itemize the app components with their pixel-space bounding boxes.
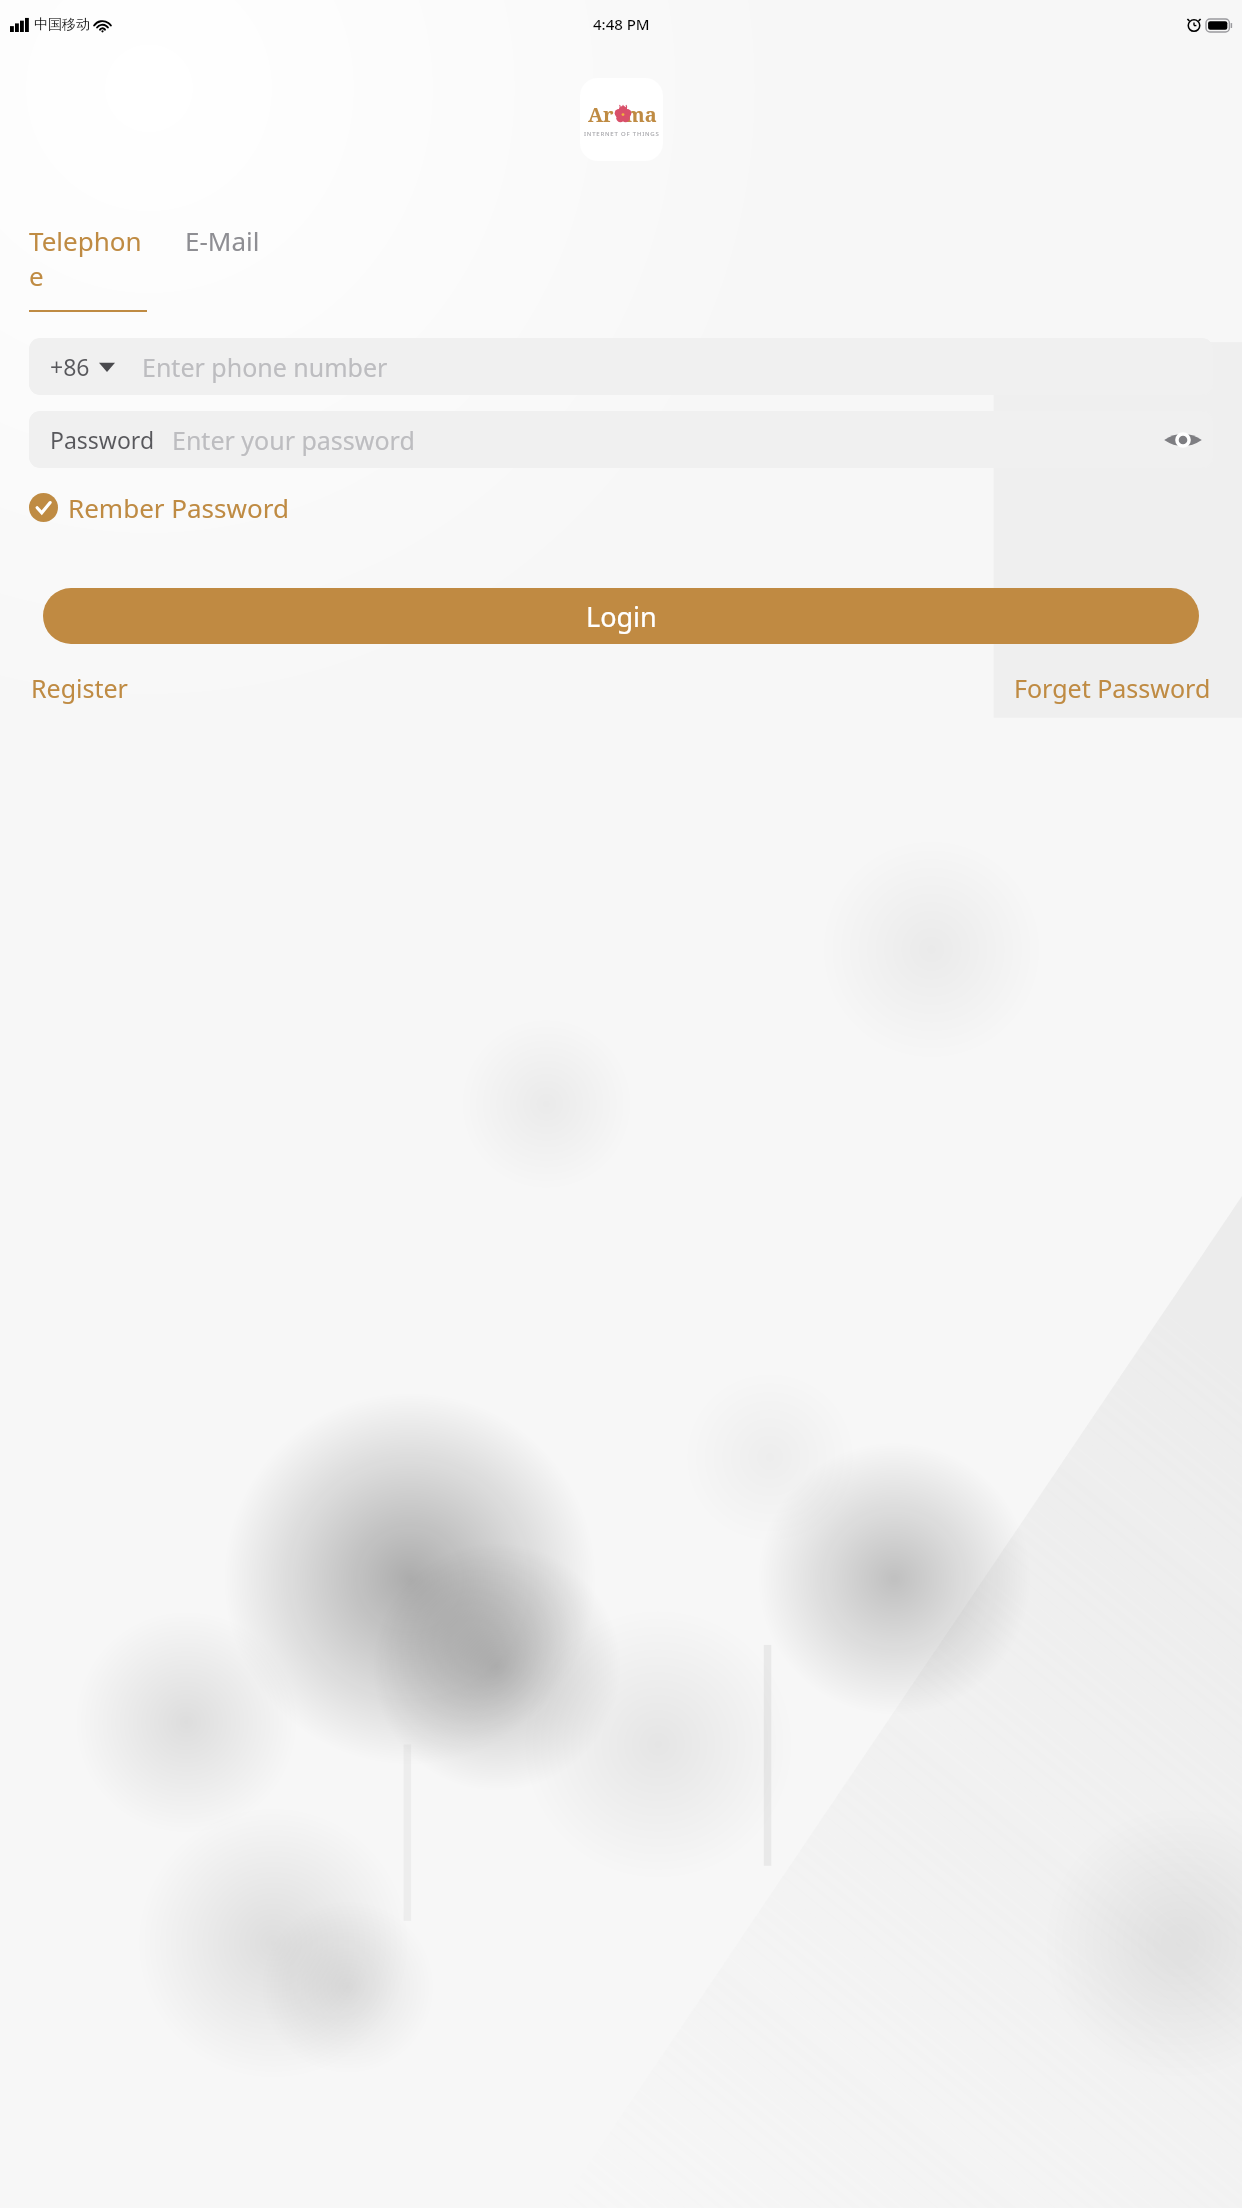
staticText: Forget Password <box>1014 671 1211 705</box>
button[interactable]: Register <box>29 668 130 708</box>
button[interactable]: Password <box>29 411 1213 468</box>
staticText: Ar <box>588 101 614 128</box>
staticText: Login <box>586 598 657 635</box>
button[interactable]: Login <box>43 588 1199 644</box>
staticText: +86 <box>50 351 90 382</box>
staticText: Enter your password <box>172 423 415 457</box>
button[interactable]: Show password <box>1159 416 1207 464</box>
staticText: E-Mail <box>185 223 260 258</box>
staticText: Rember Password <box>68 490 289 525</box>
button[interactable]: Forget Password <box>1012 668 1213 708</box>
button[interactable]: Rember Password <box>29 490 289 525</box>
staticText: Enter phone number <box>142 350 388 384</box>
staticText: 4:48 PM <box>593 14 650 34</box>
staticText: ma <box>625 101 657 128</box>
staticText: Telephone <box>29 223 147 293</box>
button[interactable]: E-Mail <box>163 223 281 258</box>
staticText: INTERNET OF THINGS <box>584 130 660 138</box>
staticText: Password <box>50 424 155 455</box>
staticText: Register <box>31 671 128 705</box>
button[interactable]: +86 <box>29 338 1213 395</box>
button[interactable]: Telephone <box>29 223 147 312</box>
staticText: 中国移动 <box>34 16 90 34</box>
